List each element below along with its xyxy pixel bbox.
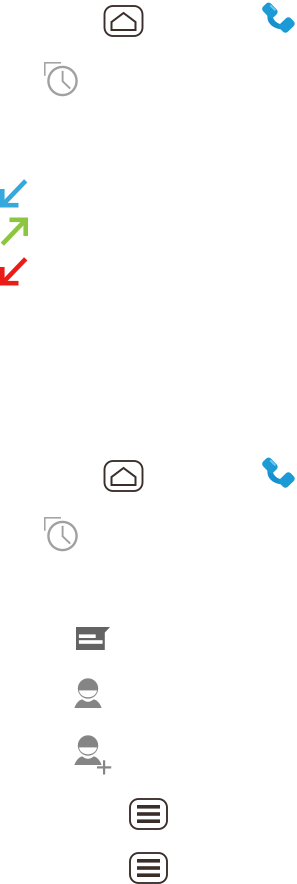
button[interactable]: Home [104,461,142,491]
button[interactable]: Menu [130,853,167,883]
button[interactable]: Contact details [74,682,102,712]
button[interactable]: Call [261,1,295,34]
button[interactable]: Missed call [0,256,28,285]
button[interactable]: Home [104,6,142,36]
button[interactable]: Send message [76,627,110,650]
button[interactable]: Incoming call [0,178,28,207]
button[interactable]: Menu [130,799,167,829]
button[interactable]: Recents [44,517,78,551]
button[interactable]: Outgoing call [0,217,28,246]
button[interactable]: Recents [44,62,78,96]
button[interactable]: Call [261,456,295,489]
button[interactable]: Add contact [74,735,111,775]
